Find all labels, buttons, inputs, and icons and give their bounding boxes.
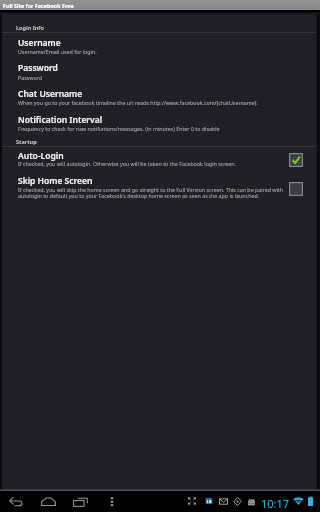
button[interactable]: [0, 111, 320, 137]
staticText: Chat Username: [18, 88, 83, 100]
button[interactable]: More options: [104, 491, 120, 512]
staticText: Password: [18, 74, 298, 81]
staticText: Username/Email used for login.: [18, 48, 298, 55]
staticText: When you go to your facebook timeline th…: [18, 99, 303, 106]
button[interactable]: Checked: [289, 153, 303, 167]
staticText: If checked, you will autologin. Otherwis…: [18, 160, 290, 167]
staticText: Startup: [16, 138, 37, 145]
staticText: Notification Interval: [18, 114, 103, 126]
button[interactable]: Home: [38, 491, 58, 512]
staticText: Password: [18, 62, 58, 74]
staticText: Skip Home Screen: [18, 175, 93, 187]
button[interactable]: Back: [6, 491, 26, 512]
staticText: Frequency to check for new notifiations/…: [18, 125, 303, 132]
staticText: 10:17: [261, 496, 290, 511]
button[interactable]: [0, 33, 320, 59]
button[interactable]: Unchecked: [289, 182, 303, 196]
button[interactable]: [0, 59, 320, 85]
button[interactable]: [0, 85, 320, 111]
staticText: If checked, you will skip the home scree…: [18, 186, 290, 200]
staticText: Login Info: [16, 24, 44, 31]
staticText: Full Site for Facebook Free: [3, 2, 74, 9]
staticText: Auto-Login: [18, 150, 64, 162]
staticText: Username: [18, 37, 61, 49]
button[interactable]: Recent apps: [70, 491, 90, 512]
